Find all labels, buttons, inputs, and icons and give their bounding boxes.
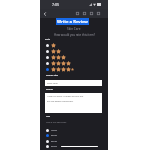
staticText: 35-44: [51, 140, 57, 143]
button[interactable]: 35-44: [46, 139, 72, 144]
staticText: I love it so much. It makes my skin soft…: [47, 95, 84, 103]
staticText: Rate: [45, 38, 51, 41]
button[interactable]: 25-34: [46, 133, 72, 138]
button[interactable]: [46, 42, 74, 48]
button[interactable]: 18-24: [46, 128, 72, 133]
button[interactable]: Back: [40, 9, 49, 18]
button[interactable]: Bookmark: [88, 10, 95, 17]
button[interactable]: More: [95, 10, 102, 17]
button[interactable]: Write a Review: [56, 18, 89, 25]
button[interactable]: Cast: [81, 10, 88, 17]
staticText: Review Title: [46, 74, 59, 77]
button[interactable]: 45-54: [46, 144, 72, 149]
staticText: 7:05: [52, 2, 60, 7]
staticText: Skin Care: [67, 27, 81, 31]
button[interactable]: Great value: [45, 80, 102, 86]
staticText: 45-54: [51, 145, 57, 148]
staticText: Review: [46, 88, 54, 91]
staticText: Age: [46, 115, 50, 118]
button[interactable]: [46, 66, 74, 72]
staticText: How would you rate this item?: [54, 33, 95, 37]
button[interactable]: [46, 60, 74, 66]
button[interactable]: I love it so much. It makes my skin soft…: [45, 93, 102, 113]
staticText: Write a Review: [57, 19, 88, 25]
button[interactable]: Search: [74, 10, 81, 17]
staticText: 25-34: [51, 134, 57, 137]
button[interactable]: [46, 48, 74, 54]
staticText: What is your age range?: [46, 121, 67, 123]
staticText: 18-24: [51, 129, 57, 132]
button[interactable]: [46, 54, 74, 60]
staticText: Great value: [47, 82, 58, 85]
